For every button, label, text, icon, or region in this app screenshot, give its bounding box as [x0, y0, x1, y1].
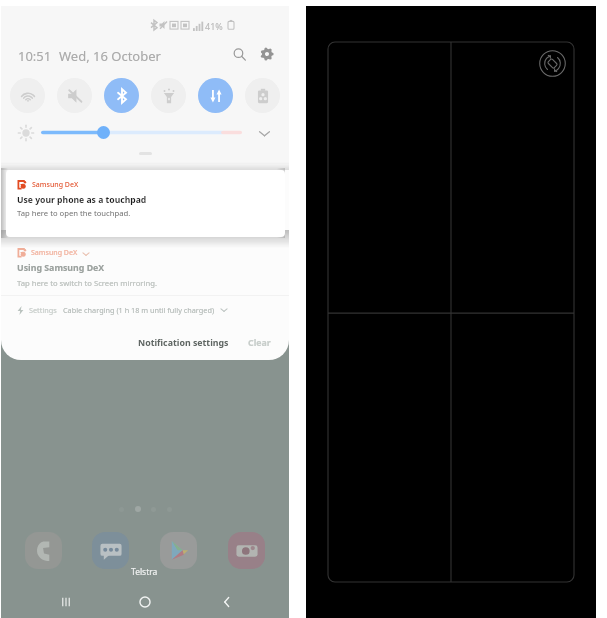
button[interactable]: Quick setting: [104, 78, 139, 113]
button[interactable]: Notification settings: [130, 332, 237, 354]
button[interactable]: Camera: [228, 532, 265, 569]
button[interactable]: Clear: [240, 332, 279, 354]
staticText: Samsung DeX: [31, 248, 78, 258]
button[interactable]: Rotate screen: [537, 48, 567, 78]
staticText: 10:51: [18, 47, 52, 65]
button[interactable]: Recents: [50, 586, 82, 618]
button[interactable]: Back: [211, 586, 243, 618]
staticText: Samsung DeX: [32, 180, 79, 190]
button[interactable]: Samsung DeX: [18, 247, 268, 297]
staticText: Tap here to open the touchpad.: [17, 208, 131, 218]
staticText: Using Samsung DeX: [17, 262, 105, 274]
button[interactable]: Play Store: [160, 532, 197, 569]
button[interactable]: Samsung DeX: [6, 170, 285, 237]
button[interactable]: Quick setting: [57, 78, 92, 113]
button[interactable]: Settings: [256, 43, 278, 65]
staticText: Tap here to switch to Screen mirroring.: [17, 278, 157, 288]
button[interactable]: Quick setting: [151, 78, 186, 113]
button[interactable]: Home: [129, 586, 161, 618]
staticText: 41%: [205, 20, 223, 32]
button[interactable]: Settings: [16, 303, 228, 317]
staticText: Use your phone as a touchpad: [17, 194, 147, 206]
button[interactable]: Quick setting: [245, 78, 280, 113]
staticText: Wed, 16 October: [59, 47, 161, 65]
staticText: Telstra: [131, 566, 158, 578]
button[interactable]: Brightness slider: [97, 126, 110, 139]
button[interactable]: Expand quick settings: [256, 125, 273, 142]
button[interactable]: Phone: [25, 532, 62, 569]
button[interactable]: Messages: [92, 532, 129, 569]
staticText: Cable charging (1 h 18 m until fully cha…: [63, 305, 215, 315]
staticText: Settings: [29, 305, 57, 315]
button[interactable]: Quick setting: [198, 78, 233, 113]
staticText: Clear: [248, 337, 271, 349]
button[interactable]: Search: [228, 43, 250, 65]
button[interactable]: Quick setting: [10, 78, 45, 113]
staticText: Notification settings: [138, 337, 229, 349]
